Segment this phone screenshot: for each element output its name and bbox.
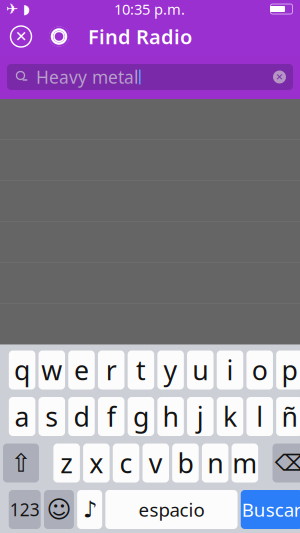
button[interactable]: c bbox=[113, 443, 139, 482]
staticText: m bbox=[232, 445, 257, 481]
staticText: u bbox=[192, 352, 208, 388]
button[interactable]: j bbox=[187, 397, 213, 436]
button[interactable]: Emoji bbox=[44, 490, 74, 529]
button[interactable]: u bbox=[187, 350, 213, 389]
button[interactable]: y bbox=[157, 350, 184, 389]
staticText: ⌫ bbox=[274, 450, 300, 476]
button[interactable]: Settings bbox=[42, 18, 76, 55]
button[interactable]: i bbox=[217, 350, 243, 389]
staticText: Heavy metal bbox=[36, 65, 138, 88]
button[interactable]: Buscar bbox=[241, 490, 300, 529]
staticText: g bbox=[133, 399, 149, 434]
staticText: a bbox=[15, 399, 30, 434]
button[interactable]: s bbox=[38, 397, 65, 436]
staticText: s bbox=[45, 399, 58, 434]
button[interactable]: g bbox=[128, 397, 154, 436]
staticText: q bbox=[14, 352, 30, 388]
staticText: h bbox=[163, 399, 179, 434]
button[interactable]: a bbox=[9, 397, 35, 436]
button[interactable]: o bbox=[246, 350, 273, 389]
staticText: t bbox=[136, 352, 146, 388]
button[interactable]: b bbox=[172, 443, 199, 482]
staticText: 10:35 p.m. bbox=[114, 0, 185, 19]
button[interactable]: w bbox=[38, 350, 65, 389]
staticText: v bbox=[149, 445, 163, 481]
button[interactable]: d bbox=[68, 397, 95, 436]
button[interactable]: x bbox=[83, 443, 110, 482]
staticText: p bbox=[281, 352, 297, 388]
button[interactable]: Search bbox=[7, 64, 293, 90]
staticText: c bbox=[120, 445, 133, 481]
staticText: i bbox=[226, 352, 233, 388]
staticText: ✈ bbox=[6, 1, 18, 17]
staticText: o bbox=[252, 352, 268, 388]
button[interactable]: Numbers bbox=[9, 490, 41, 529]
button[interactable]: Shift bbox=[3, 443, 39, 482]
button[interactable]: v bbox=[142, 443, 169, 482]
button[interactable]: q bbox=[9, 350, 35, 389]
staticText: Find Radio bbox=[88, 23, 192, 50]
staticText: ◗ bbox=[23, 1, 30, 16]
staticText: f bbox=[107, 399, 116, 434]
staticText: Buscar bbox=[242, 497, 300, 522]
staticText: r bbox=[106, 352, 117, 388]
staticText: w bbox=[41, 352, 62, 388]
staticText: ✕ bbox=[15, 28, 27, 45]
button[interactable]: Dictate bbox=[77, 490, 102, 529]
button[interactable]: Delete bbox=[272, 443, 300, 482]
staticText: ☺ bbox=[46, 496, 71, 523]
staticText: 123 bbox=[10, 498, 40, 521]
button[interactable]: p bbox=[276, 350, 300, 389]
staticText: ⇧ bbox=[10, 449, 31, 477]
staticText: espacio bbox=[138, 497, 204, 522]
staticText: z bbox=[60, 445, 73, 481]
staticText: b bbox=[177, 445, 193, 481]
button[interactable]: n bbox=[202, 443, 228, 482]
button[interactable]: r bbox=[98, 350, 124, 389]
staticText: y bbox=[164, 352, 178, 388]
button[interactable]: Close bbox=[0, 18, 42, 55]
staticText: n bbox=[207, 445, 223, 481]
button[interactable]: f bbox=[98, 397, 124, 436]
staticText: d bbox=[73, 399, 89, 434]
button[interactable]: l bbox=[246, 397, 273, 436]
staticText: l bbox=[256, 399, 263, 434]
button[interactable]: e bbox=[68, 350, 95, 389]
button[interactable]: m bbox=[232, 443, 258, 482]
staticText: ♪ bbox=[83, 497, 97, 522]
button[interactable]: ñ bbox=[276, 397, 300, 436]
button[interactable]: z bbox=[53, 443, 80, 482]
button[interactable]: k bbox=[217, 397, 243, 436]
staticText: j bbox=[197, 399, 204, 434]
staticText: ✕ bbox=[275, 72, 283, 82]
staticText: k bbox=[223, 399, 237, 434]
staticText: x bbox=[89, 445, 103, 481]
button[interactable]: h bbox=[157, 397, 184, 436]
staticText: ñ bbox=[281, 399, 297, 434]
button[interactable]: t bbox=[128, 350, 154, 389]
button[interactable]: espacio bbox=[105, 490, 238, 529]
staticText: e bbox=[74, 352, 89, 388]
